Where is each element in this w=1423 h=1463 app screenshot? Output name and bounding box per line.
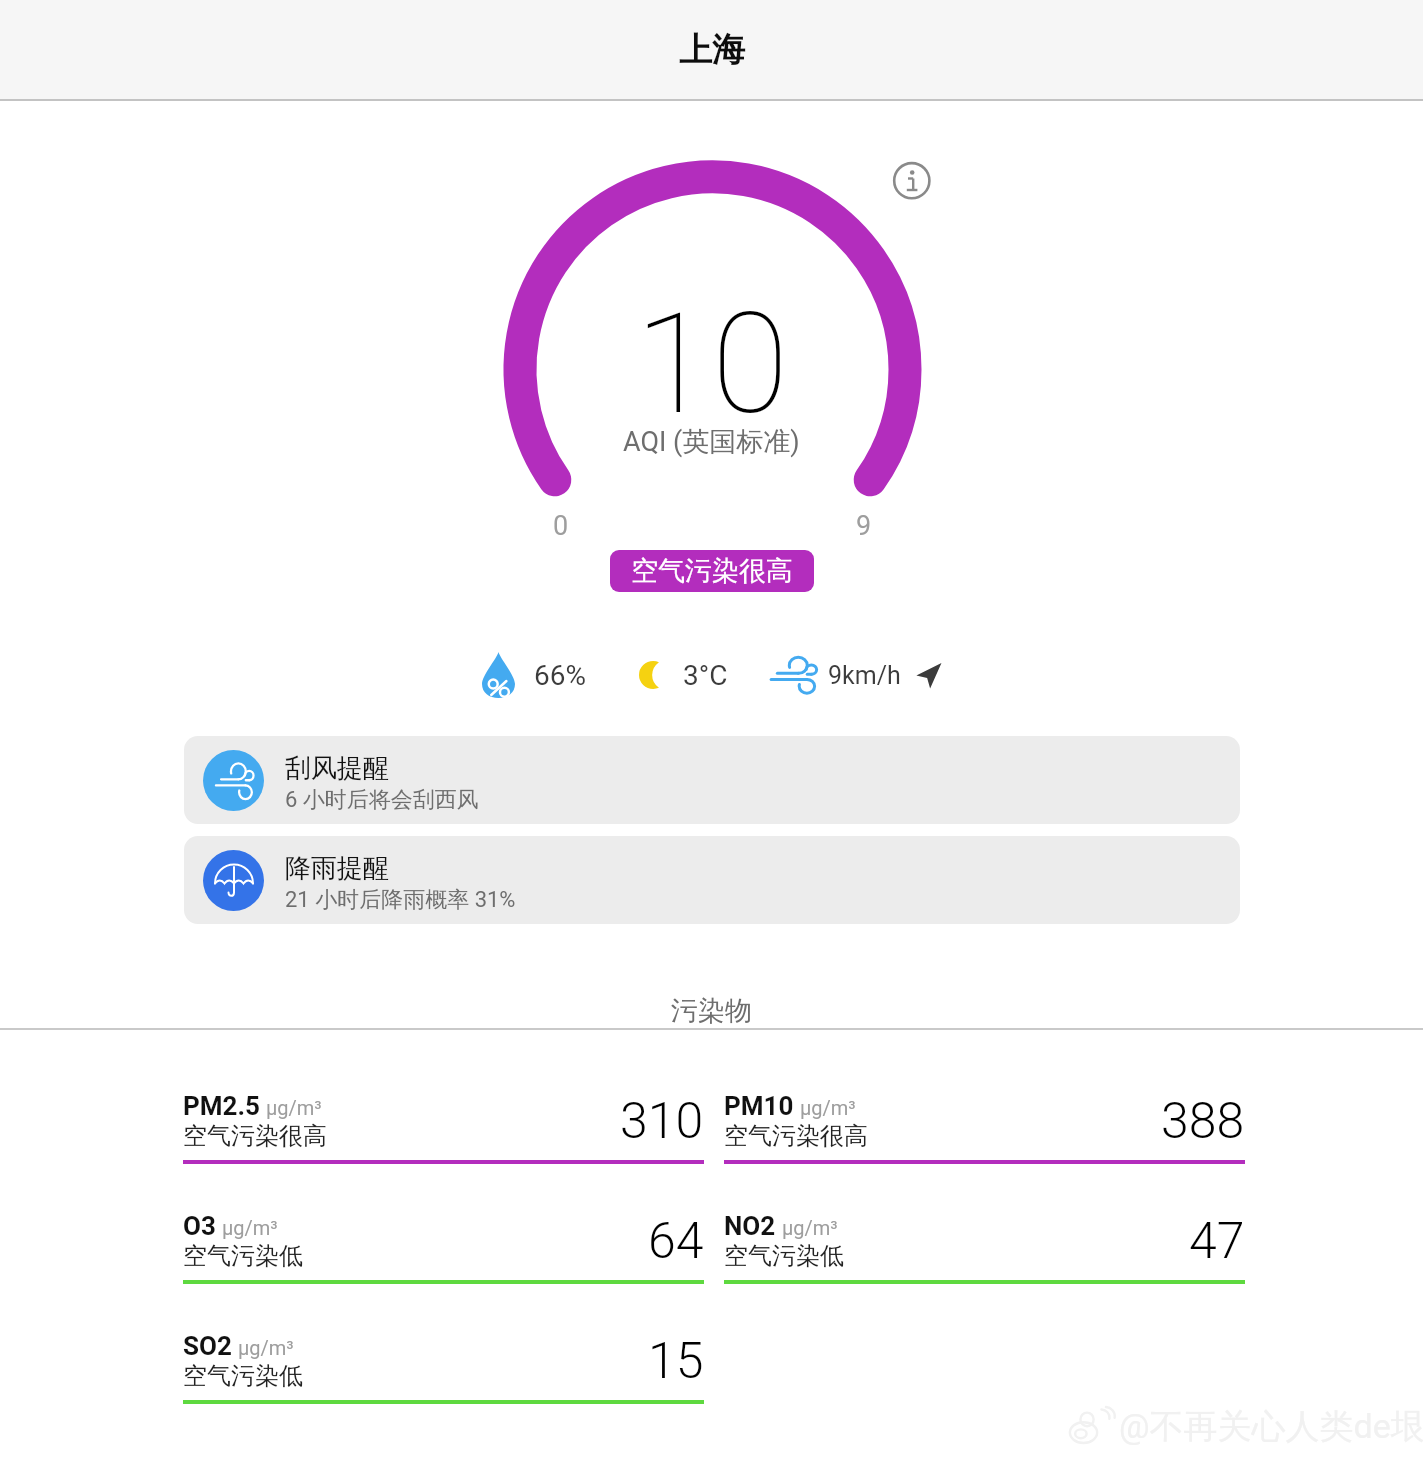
staticText: µg/m³ [782, 1216, 838, 1239]
staticText: 空气污染很高 [183, 1121, 327, 1151]
button[interactable]: Information [892, 161, 932, 201]
staticText: 刮风提醒 [285, 752, 389, 785]
staticText: µg/m³ [800, 1096, 856, 1119]
staticText: 21 小时后降雨概率 31% [285, 886, 516, 914]
staticText: 上海 [679, 29, 745, 71]
staticText: 10 [635, 282, 789, 446]
staticText: µg/m³ [238, 1336, 294, 1359]
button[interactable]: PM10 [724, 1091, 1245, 1164]
staticText: 降雨提醒 [285, 852, 389, 885]
button[interactable]: O3 [183, 1211, 704, 1284]
staticText: 9km/h [828, 661, 901, 690]
staticText: 66% [534, 659, 586, 692]
staticText: 64 [648, 1212, 704, 1271]
staticText: 0 [553, 510, 569, 542]
staticText: PM10 [724, 1091, 794, 1121]
staticText: @不再关心人类de垠 [1119, 1405, 1423, 1448]
button[interactable]: NO2 [724, 1211, 1245, 1284]
staticText: µg/m³ [222, 1216, 278, 1239]
button[interactable]: 降雨提醒 [184, 836, 1240, 924]
staticText: SO2 [183, 1331, 232, 1361]
button[interactable]: SO2 [183, 1331, 704, 1404]
button[interactable]: 刮风提醒 [184, 736, 1240, 824]
staticText: 污染物 [671, 994, 752, 1028]
staticText: NO2 [724, 1211, 776, 1241]
staticText: PM2.5 [183, 1091, 260, 1121]
staticText: 空气污染低 [183, 1241, 303, 1271]
staticText: 310 [620, 1092, 704, 1151]
staticText: AQI (英国标准) [623, 425, 800, 459]
staticText: 空气污染很高 [631, 554, 793, 588]
staticText: 空气污染低 [724, 1241, 844, 1271]
staticText: 388 [1161, 1092, 1245, 1151]
staticText: O3 [183, 1211, 216, 1241]
staticText: 6 小时后将会刮西风 [285, 786, 479, 814]
staticText: 47 [1189, 1212, 1245, 1271]
button[interactable]: 空气污染很高 [610, 550, 814, 592]
button[interactable]: PM2.5 [183, 1091, 704, 1164]
staticText: 空气污染低 [183, 1361, 303, 1391]
staticText: 3°C [683, 659, 728, 692]
staticText: 15 [648, 1332, 704, 1391]
staticText: 9 [856, 510, 872, 542]
staticText: 空气污染很高 [724, 1121, 868, 1151]
staticText: µg/m³ [266, 1096, 322, 1119]
